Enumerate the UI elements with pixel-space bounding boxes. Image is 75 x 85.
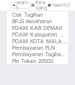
button[interactable]: Keranjang xyxy=(31,1,48,9)
staticText: PDAM KAB DEMAK xyxy=(12,25,63,31)
button[interactable]: PDAM Kabupaten Malang xyxy=(7,31,68,38)
button[interactable]: Favorit xyxy=(48,1,65,9)
button[interactable]: Pembayaran Tagihan Telkom xyxy=(7,51,68,58)
staticText: Favorit xyxy=(52,3,65,8)
staticText: search xyxy=(16,0,29,10)
button[interactable]: Pembayaran PLN xyxy=(7,44,68,51)
staticText: Keranjang xyxy=(36,0,48,10)
button[interactable]: Account xyxy=(65,2,71,8)
staticText: Pembayaran PLN xyxy=(12,45,55,51)
button[interactable]: Cek Tagihan xyxy=(7,11,68,18)
button[interactable]: PDAM KOTA MALANG xyxy=(7,38,68,44)
button[interactable]: PDAM KAB DEMAK xyxy=(7,25,68,31)
button[interactable]: search xyxy=(11,2,31,8)
staticText: Cek Tagihan xyxy=(12,12,43,18)
staticText: PDAM Kabupaten Malang xyxy=(12,31,68,38)
button[interactable]: Pln Token 20000 xyxy=(7,58,68,64)
staticText: PDAM KOTA MALANG xyxy=(12,38,68,44)
staticText: Pembayaran Tagihan Telkom xyxy=(12,51,68,58)
staticText: BPJS Kesehatan xyxy=(12,18,52,25)
staticText: Pln Token 20000 xyxy=(12,58,53,64)
button[interactable]: BPJS Kesehatan xyxy=(7,18,68,25)
